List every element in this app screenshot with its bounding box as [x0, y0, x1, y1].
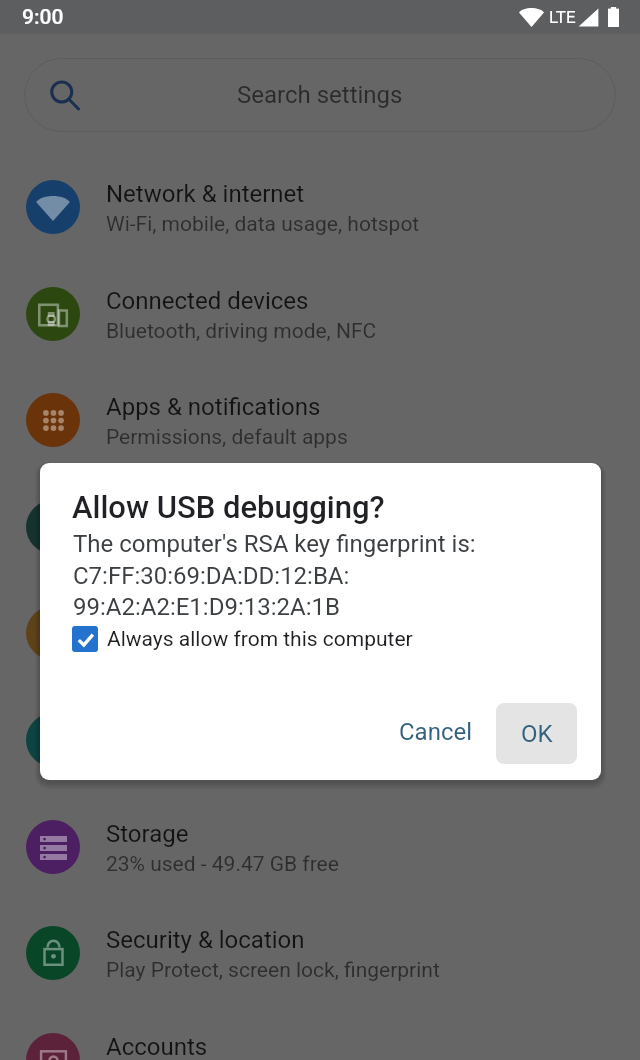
staticText: Accounts: [106, 1033, 208, 1060]
button[interactable]: Network & internet: [0, 154, 640, 260]
button[interactable]: Storage: [0, 794, 640, 900]
staticText: 23% used - 49.47 GB free: [106, 852, 339, 877]
staticText: Allow USB debugging?: [72, 489, 385, 525]
button[interactable]: Accounts: [0, 1007, 640, 1060]
staticText: LTE: [549, 7, 576, 27]
button[interactable]: Sound: [0, 687, 640, 793]
button[interactable]: Battery: [0, 474, 640, 580]
staticText: OK: [521, 720, 553, 748]
button[interactable]: Display: [0, 580, 640, 686]
button[interactable]: Always allow from this computer: [72, 626, 413, 652]
other: Battery: [608, 7, 619, 27]
staticText: Apps & notifications: [106, 393, 321, 421]
button[interactable]: Connected devices: [0, 261, 640, 367]
staticText: Connected devices: [106, 287, 309, 315]
staticText: 75% - 6 hr 30 min left: [106, 532, 302, 557]
staticText: Cancel: [399, 718, 473, 746]
staticText: Security & location: [106, 926, 305, 954]
staticText: Play Protect, screen lock, fingerprint: [106, 958, 440, 983]
button[interactable]: Search: [24, 58, 616, 132]
other: Wi-Fi signal: [519, 7, 544, 27]
staticText: Permissions, default apps: [106, 425, 348, 450]
button[interactable]: Security & location: [0, 900, 640, 1006]
staticText: The computer's RSA key fingerprint is: C…: [73, 530, 476, 620]
staticText: Search settings: [237, 81, 403, 109]
staticText: Storage: [106, 820, 189, 848]
staticText: Network & internet: [106, 180, 305, 208]
staticText: Bluetooth, driving mode, NFC: [106, 319, 377, 344]
staticText: Display: [106, 606, 184, 634]
other: Mobile signal: [578, 8, 599, 27]
staticText: Wallpaper, sleep, font size: [106, 638, 347, 663]
staticText: Always allow from this computer: [107, 627, 413, 652]
button[interactable]: Cancel: [376, 701, 496, 763]
other: Search: [51, 82, 80, 111]
button[interactable]: Apps & notifications: [0, 367, 640, 473]
staticText: 9:00: [22, 5, 64, 30]
staticText: Battery: [106, 500, 183, 528]
staticText: Wi-Fi, mobile, data usage, hotspot: [106, 212, 420, 237]
button[interactable]: OK: [496, 703, 577, 764]
